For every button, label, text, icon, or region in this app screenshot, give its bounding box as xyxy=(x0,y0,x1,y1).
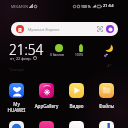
staticText: 21:54 xyxy=(103,3,114,9)
staticText: My HUAWEI xyxy=(3,101,30,113)
staticText: 100% xyxy=(75,53,84,57)
staticText: Я xyxy=(18,26,22,33)
staticText: -4° xyxy=(106,63,112,69)
button[interactable]: Файлы xyxy=(99,83,114,98)
button[interactable]: AppGallery xyxy=(33,103,60,109)
button[interactable]: Store xyxy=(39,121,54,128)
staticText: 21:54 xyxy=(9,40,44,59)
button[interactable]: Docs xyxy=(99,121,114,128)
button[interactable]: My HUAWEI xyxy=(3,101,30,113)
other: Expand notification xyxy=(97,26,103,32)
button[interactable]: AppGallery xyxy=(39,83,54,98)
staticText: 0 баллов xyxy=(50,53,64,57)
button[interactable]: Notes xyxy=(69,121,84,128)
staticText: пт, 22 февр. xyxy=(10,56,32,61)
button[interactable]: Я xyxy=(11,22,118,36)
staticText: 100 % xyxy=(81,4,91,9)
staticText: Таганрог xyxy=(9,67,25,72)
button[interactable]: Видео xyxy=(69,83,84,98)
button[interactable]: Telegram xyxy=(9,121,24,128)
staticText: Видео xyxy=(63,103,90,109)
button[interactable]: Видео xyxy=(63,103,90,109)
staticText: MEGAFON xyxy=(11,4,28,9)
staticText: AppGallery xyxy=(33,103,60,109)
staticText: Музыка в Яндексе xyxy=(28,27,60,32)
button[interactable]: My HUAWEI xyxy=(9,83,24,98)
staticText: Файлы xyxy=(93,103,120,109)
button[interactable]: Файлы xyxy=(93,103,120,109)
button[interactable]: Alice assistant xyxy=(106,25,114,33)
